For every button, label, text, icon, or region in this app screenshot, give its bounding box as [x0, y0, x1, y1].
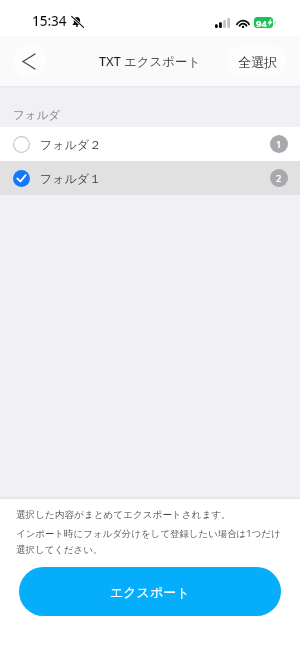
staticText: フォルダ — [13, 108, 61, 122]
button[interactable]: Back — [13, 44, 47, 78]
button[interactable]: フォルダ２ — [0, 127, 300, 161]
staticText: 94 — [256, 17, 267, 28]
staticText: 選択した内容がまとめてエクスポートされます。 — [16, 509, 231, 521]
staticText: インポート時にフォルダ分けをして登録したい場合は1つだけ選択してください。 — [16, 527, 288, 556]
button[interactable]: 全選択 — [227, 45, 287, 78]
staticText: フォルダ２ — [40, 137, 102, 152]
staticText: フォルダ１ — [40, 171, 102, 186]
staticText: エクスポート — [110, 584, 190, 600]
staticText: TXT エクスポート — [99, 53, 201, 70]
staticText: 全選択 — [238, 54, 277, 70]
staticText: 2 — [276, 172, 282, 185]
staticText: 1 — [276, 138, 282, 151]
button[interactable]: エクスポート — [19, 567, 281, 616]
button[interactable]: フォルダ１ — [0, 161, 300, 195]
staticText: 15:34 — [32, 12, 67, 30]
